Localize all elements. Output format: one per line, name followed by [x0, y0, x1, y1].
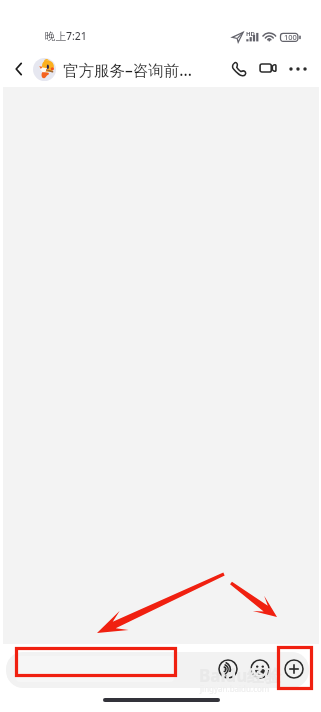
button[interactable]: Video call	[254, 54, 282, 82]
staticText: jingyan.baidu.com	[200, 683, 270, 694]
staticText: 官方服务–咨询前...	[63, 59, 192, 80]
staticText: HD	[246, 30, 255, 38]
button[interactable]	[16, 656, 174, 682]
button[interactable]: Voice message	[218, 659, 238, 679]
button[interactable]: Emoji	[250, 659, 270, 679]
staticText: 100	[284, 32, 297, 42]
button[interactable]: 官方服务–咨询前...	[33, 52, 195, 87]
button[interactable]: More options	[284, 55, 312, 83]
button[interactable]: Call	[225, 55, 253, 83]
button[interactable]: Back	[7, 57, 31, 81]
button[interactable]: More actions	[284, 659, 304, 679]
staticText: Baidu经验	[199, 664, 282, 687]
staticText: 晚上7:21	[45, 29, 87, 43]
